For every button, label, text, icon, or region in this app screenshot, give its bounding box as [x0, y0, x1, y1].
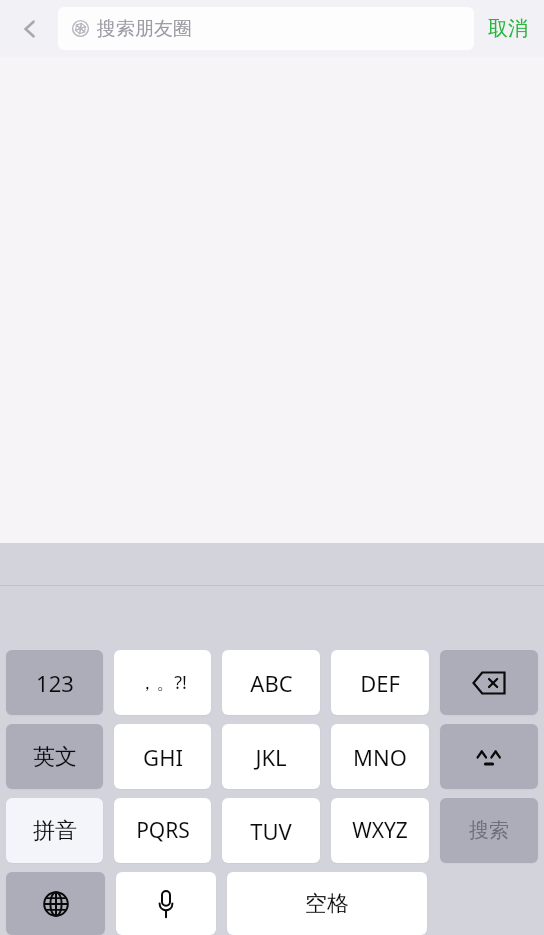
button[interactable]: 搜索朋友圈 [58, 7, 474, 50]
staticText: DEF [360, 668, 400, 698]
button[interactable]: JKL [222, 724, 320, 789]
button[interactable]: ABC [222, 650, 320, 715]
button[interactable]: Voice input [116, 872, 216, 935]
button[interactable]: PQRS [114, 798, 211, 863]
button[interactable]: Delete [440, 650, 538, 715]
button[interactable]: 英文 [6, 724, 103, 789]
staticText: PQRS [136, 816, 190, 845]
staticText: 123 [36, 668, 74, 698]
button[interactable]: WXYZ [331, 798, 429, 863]
button[interactable]: 搜索 [440, 798, 538, 863]
button[interactable]: DEF [331, 650, 429, 715]
button[interactable]: ，。?! [114, 650, 211, 715]
staticText: 搜索 [469, 818, 509, 843]
button[interactable]: MNO [331, 724, 429, 789]
button[interactable]: 取消 [486, 10, 530, 47]
staticText: MNO [353, 742, 407, 772]
staticText: GHI [143, 742, 183, 772]
staticText: 英文 [33, 743, 77, 771]
staticText: TUV [250, 816, 292, 846]
staticText: 搜索朋友圈 [97, 17, 192, 41]
button[interactable]: GHI [114, 724, 211, 789]
button[interactable]: Emoji [440, 724, 538, 789]
staticText: JKL [255, 742, 287, 772]
button[interactable]: 拼音 [6, 798, 103, 863]
button[interactable]: 空格 [227, 872, 427, 935]
staticText: ，。?! [138, 670, 187, 695]
button[interactable]: TUV [222, 798, 320, 863]
staticText: 取消 [488, 16, 528, 41]
staticText: ABC [250, 668, 293, 698]
button[interactable]: 123 [6, 650, 103, 715]
staticText: 空格 [305, 890, 349, 918]
button[interactable]: Back [8, 7, 52, 51]
staticText: 拼音 [33, 817, 77, 845]
button[interactable]: Switch keyboard [6, 872, 105, 935]
staticText: WXYZ [352, 816, 408, 845]
